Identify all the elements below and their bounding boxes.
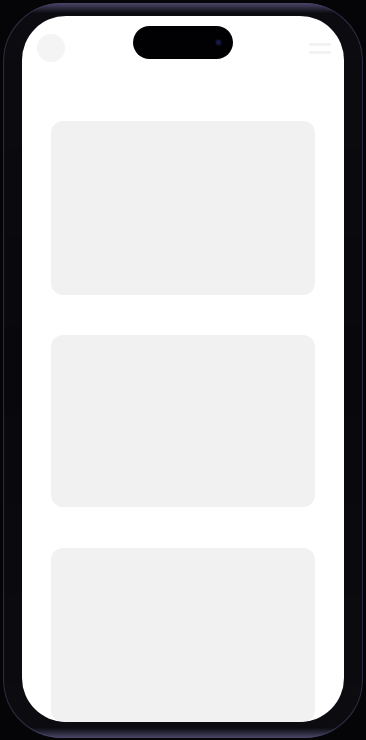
button[interactable]: Menu <box>303 34 337 62</box>
button[interactable] <box>51 548 315 722</box>
button[interactable]: Profile <box>37 34 65 62</box>
